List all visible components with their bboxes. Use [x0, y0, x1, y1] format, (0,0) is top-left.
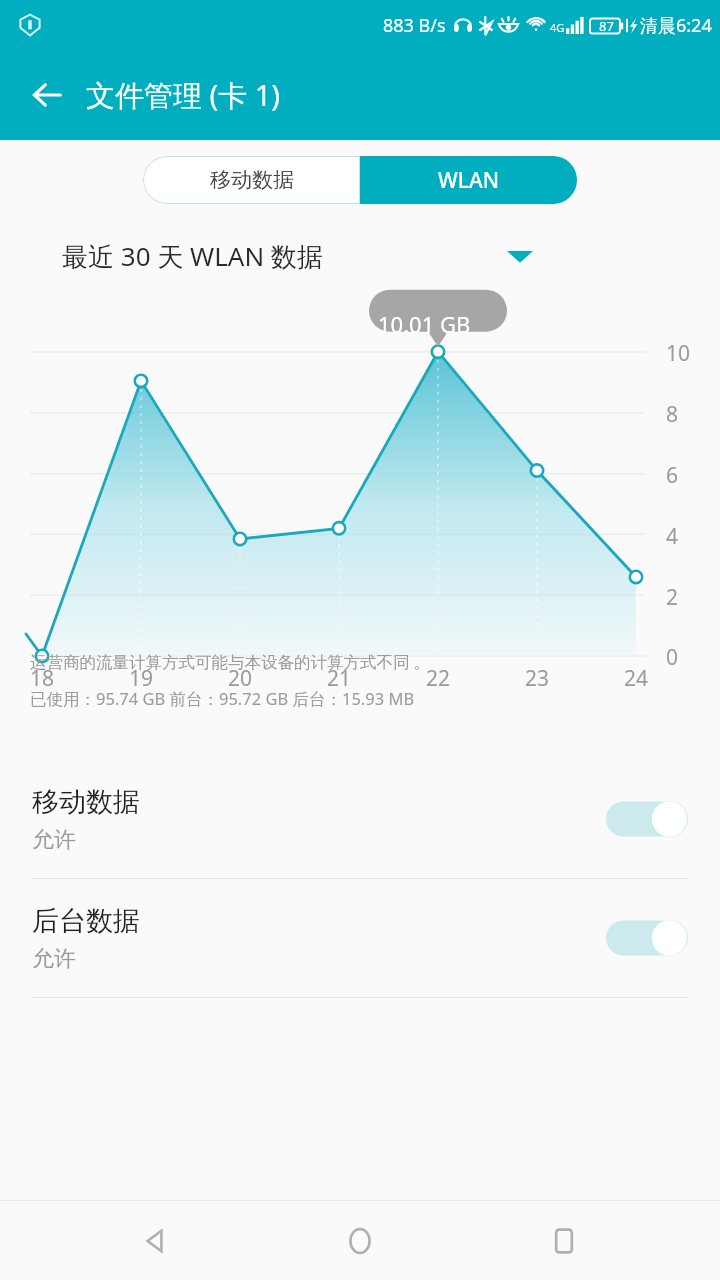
- staticText: 21: [326, 664, 352, 693]
- staticText: 20: [227, 664, 253, 693]
- staticText: 允许: [32, 826, 76, 854]
- staticText: 2: [666, 583, 679, 612]
- staticText: 文件管理 (卡 1): [86, 75, 281, 115]
- staticText: 8: [666, 400, 679, 429]
- staticText: 移动数据: [32, 785, 140, 819]
- staticText: 883 B/s: [383, 13, 446, 38]
- button[interactable]: 最近 30 天 WLAN 数据: [0, 226, 720, 286]
- staticText: 最近 30 天 WLAN 数据: [62, 238, 323, 274]
- staticText: 运营商的流量计算方式可能与本设备的计算方式不同 。: [30, 650, 431, 673]
- staticText: 后台数据: [32, 904, 140, 938]
- staticText: 24: [623, 664, 649, 693]
- button[interactable]: 后台数据 toggle: [606, 918, 688, 958]
- staticText: 10.01 GB: [378, 309, 471, 339]
- staticText: 23: [524, 664, 550, 693]
- staticText: 移动数据: [210, 167, 294, 193]
- button[interactable]: Home: [312, 1201, 408, 1280]
- button[interactable]: Back: [108, 1201, 204, 1280]
- button[interactable]: Recents: [516, 1201, 612, 1280]
- staticText: 0: [666, 643, 679, 672]
- staticText: 允许: [32, 945, 76, 973]
- other: Select period: [500, 236, 540, 276]
- staticText: WLAN: [438, 166, 500, 195]
- button[interactable]: 移动数据 toggle: [606, 799, 688, 839]
- button[interactable]: WLAN: [360, 156, 577, 204]
- button[interactable]: Back: [20, 67, 76, 123]
- staticText: 6: [666, 461, 679, 490]
- staticText: 已使用：95.74 GB 前台：95.72 GB 后台：15.93 MB: [30, 687, 415, 710]
- button[interactable]: 后台数据: [0, 879, 720, 998]
- staticText: 清晨6:24: [640, 13, 712, 38]
- staticText: 87: [599, 17, 614, 35]
- staticText: 19: [128, 664, 154, 693]
- staticText: 18: [29, 664, 55, 693]
- staticText: 10: [666, 339, 691, 368]
- staticText: 4G: [550, 20, 565, 35]
- button[interactable]: 移动数据: [0, 760, 720, 879]
- staticText: 22: [425, 664, 451, 693]
- staticText: 4: [666, 522, 679, 551]
- button[interactable]: 移动数据: [143, 156, 360, 204]
